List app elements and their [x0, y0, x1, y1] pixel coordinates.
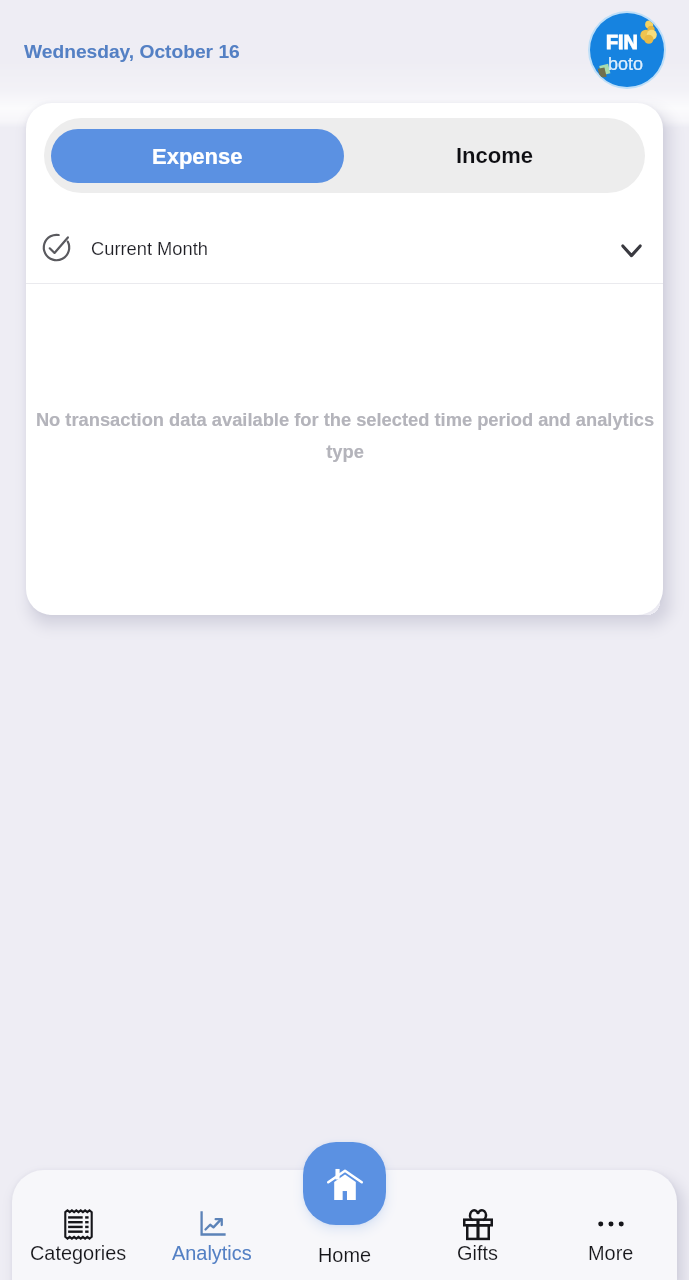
staticText: Categories — [30, 1242, 127, 1264]
staticText: boto — [608, 54, 644, 74]
staticText: Wednesday, October 16 — [24, 41, 240, 62]
button[interactable]: Current Month — [26, 193, 663, 283]
button[interactable]: More — [544, 1170, 677, 1280]
button[interactable]: Analytics — [145, 1170, 278, 1280]
button[interactable]: Home — [303, 1142, 386, 1225]
staticText: No transaction data available for the se… — [33, 409, 657, 462]
staticText: Gifts — [457, 1242, 498, 1264]
staticText: FIN — [606, 31, 638, 53]
staticText: Income — [456, 143, 534, 168]
staticText: Expense — [152, 144, 243, 169]
button[interactable]: Expense — [51, 129, 344, 183]
button[interactable]: Income — [344, 118, 645, 193]
staticText: More — [588, 1242, 634, 1264]
staticText: Current Month — [91, 238, 208, 258]
button[interactable]: FINboto profile — [590, 13, 664, 87]
button[interactable]: Gifts — [411, 1170, 544, 1280]
staticText: Analytics — [172, 1242, 252, 1264]
button[interactable]: Categories — [12, 1170, 145, 1280]
staticText: Home — [318, 1244, 372, 1266]
